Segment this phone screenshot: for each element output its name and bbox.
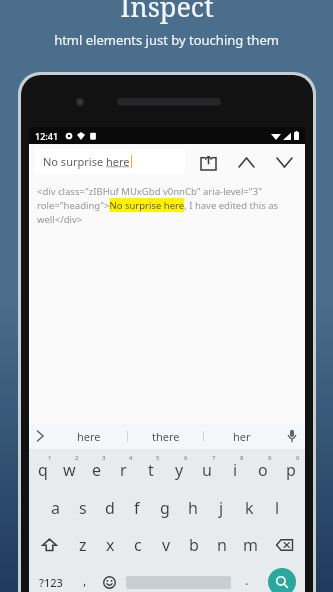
staticText: her [233,429,251,444]
button[interactable]: Voice input [279,423,305,449]
button[interactable]: b [180,526,208,563]
staticText: w [63,459,76,481]
button[interactable]: d [96,489,123,526]
button[interactable]: . [235,563,259,592]
button[interactable]: 0 [277,449,305,489]
staticText: j [219,497,224,519]
staticText: . [245,571,249,589]
staticText: 6 [184,454,188,462]
button[interactable]: 3 [83,449,110,489]
staticText: l [275,497,280,519]
button[interactable]: 9 [249,449,277,489]
button[interactable]: here [51,423,127,449]
staticText: 4 [129,454,133,462]
button[interactable]: f [123,489,151,526]
staticText: n [217,534,227,556]
button[interactable]: h [179,489,207,526]
staticText: 1 [48,454,52,462]
button[interactable]: x [96,526,124,563]
staticText: 12:41 [35,130,59,142]
button[interactable]: Expand [29,423,51,449]
button[interactable]: Shift [29,526,69,563]
staticText: k [245,497,254,519]
staticText: No surprise here [43,154,130,169]
staticText: v [162,534,171,556]
button[interactable]: 2 [56,449,83,489]
button[interactable]: ?123 [29,563,73,592]
staticText: u [202,459,212,481]
staticText: m [243,534,258,556]
button[interactable]: j [207,489,235,526]
staticText: e [92,459,102,481]
staticText: y [175,459,184,481]
button[interactable]: her [204,423,279,449]
button[interactable]: a [42,489,69,526]
button[interactable]: No surprise here [35,149,185,174]
staticText: ?123 [39,575,63,590]
button[interactable]: Search [259,563,305,592]
button[interactable]: g [151,489,179,526]
staticText: g [160,497,170,519]
button[interactable]: z [69,526,96,563]
button[interactable]: 5 [137,449,165,489]
button[interactable]: Space [121,563,235,592]
button[interactable]: Previous [233,149,259,175]
staticText: b [189,534,199,556]
button[interactable]: Next [271,149,297,175]
staticText: 3 [102,454,106,462]
staticText: html elements just by touching them [54,31,279,49]
staticText: there [152,429,180,444]
button[interactable]: , [73,563,97,592]
button[interactable]: 8 [221,449,249,489]
staticText: 8 [240,454,244,462]
staticText: h [188,497,198,519]
staticText: s [79,497,87,519]
staticText: f [134,497,140,519]
button[interactable]: 4 [110,449,137,489]
staticText: Inspect [120,0,214,25]
button[interactable]: l [263,489,291,526]
button[interactable]: v [152,526,180,563]
staticText: 2 [75,454,79,462]
button[interactable]: Backspace [264,526,305,563]
staticText: <div class="zIBHuf MUxGbd v0nnCb" aria-l… [37,185,297,226]
button[interactable]: n [208,526,236,563]
staticText: d [105,497,115,519]
button[interactable]: there [128,423,203,449]
staticText: , [83,571,87,589]
button[interactable]: s [69,489,96,526]
staticText: x [106,534,115,556]
button[interactable]: <div class="zIBHuf MUxGbd v0nnCb" aria-l… [29,179,305,226]
staticText: a [51,497,60,519]
staticText: here [77,429,101,444]
staticText: q [38,459,48,481]
staticText: z [79,534,87,556]
staticText: c [134,534,142,556]
staticText: p [286,459,296,481]
staticText: o [258,459,268,481]
button[interactable]: 1 [29,449,56,489]
button[interactable]: 7 [193,449,221,489]
button[interactable]: m [236,526,264,563]
staticText: t [148,459,154,481]
staticText: 5 [156,454,160,462]
button[interactable]: c [124,526,152,563]
button[interactable]: k [235,489,263,526]
staticText: r [120,459,127,481]
staticText: i [233,459,238,481]
staticText: 0 [296,454,300,462]
button[interactable]: Open in new [195,149,221,175]
button[interactable]: 6 [165,449,193,489]
staticText: 9 [268,454,272,462]
staticText: 7 [212,454,216,462]
button[interactable]: Emoji [97,563,121,592]
